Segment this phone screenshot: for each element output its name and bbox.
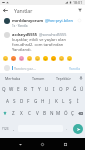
staticText: . [66, 126, 68, 131]
button[interactable]: N [48, 107, 55, 119]
button[interactable]: U [43, 83, 50, 95]
staticText: ?123 [2, 127, 9, 131]
button[interactable]: P [64, 83, 71, 95]
staticText: Yanıtını yaz... [14, 66, 36, 71]
staticText: G [34, 98, 38, 104]
button[interactable]: Shift [0, 107, 9, 119]
staticText: X [20, 110, 23, 116]
button[interactable]: Yanıtla [68, 65, 82, 72]
staticText: Yanıtlar [14, 7, 33, 14]
staticText: S [13, 98, 16, 104]
button[interactable]: T [29, 83, 36, 95]
staticText: N [50, 110, 54, 116]
button[interactable]: Teşekkür [51, 73, 76, 83]
staticText: T [31, 86, 34, 92]
button[interactable]: Emoji reaction [49, 54, 57, 63]
button[interactable]: J [46, 95, 53, 107]
button[interactable]: Voice input [76, 73, 85, 83]
staticText: Teşekkür [56, 76, 72, 81]
staticText: Ü [80, 86, 84, 92]
staticText: D [20, 98, 24, 104]
staticText: Ğ [73, 86, 77, 92]
button[interactable]: O [57, 83, 64, 95]
staticText: L [62, 98, 65, 104]
button[interactable]: Ş [67, 95, 74, 107]
button[interactable]: Emoji reaction [33, 54, 41, 63]
button[interactable]: C [25, 107, 33, 119]
button[interactable]: Z [9, 107, 17, 119]
button[interactable]: Send [70, 119, 85, 138]
staticText: E [17, 86, 20, 92]
button[interactable]: Ü [78, 83, 85, 95]
button[interactable]: Back [14, 138, 26, 150]
staticText: , [13, 126, 15, 131]
staticText: U [45, 86, 49, 92]
staticText: Z [12, 110, 15, 116]
staticText: Tamam [32, 76, 45, 81]
staticText: Q [2, 86, 6, 92]
button[interactable]: S [11, 95, 18, 107]
staticText: kuşaklar, etkili ve yaşları olan fonudhs… [12, 37, 66, 52]
button[interactable]: , [10, 119, 18, 138]
button[interactable]: Emoji reaction [41, 54, 49, 63]
button[interactable]: Ğ [71, 83, 78, 95]
button[interactable]: G [32, 95, 39, 107]
staticText: V [36, 110, 39, 116]
button[interactable]: Ç [69, 107, 76, 119]
button[interactable]: ?123 [0, 119, 10, 138]
staticText: F [27, 98, 30, 104]
staticText: İ [77, 98, 79, 104]
button[interactable]: Emoji reaction [65, 54, 73, 63]
button[interactable]: R [22, 83, 29, 95]
button[interactable]: Merhaba [0, 73, 26, 83]
staticText: 18:01 [73, 0, 83, 5]
staticText: Merhaba [5, 76, 21, 81]
button[interactable]: Y [36, 83, 43, 95]
button[interactable]: Backspace [76, 107, 85, 119]
staticText: J [49, 98, 51, 104]
button[interactable]: L [60, 95, 67, 107]
button[interactable]: V [33, 107, 41, 119]
button[interactable]: Tamam [26, 73, 51, 83]
button[interactable]: Recents [59, 138, 71, 150]
button[interactable]: Emoji reaction [25, 54, 33, 63]
staticText: W [9, 86, 14, 92]
button[interactable]: W [8, 83, 15, 95]
button[interactable]: A [4, 95, 11, 107]
staticText: C [28, 110, 31, 116]
staticText: Yanıtla [69, 66, 81, 71]
button[interactable]: Emoji reaction [17, 54, 25, 63]
button[interactable]: Home [36, 138, 48, 150]
button[interactable]: F [25, 95, 32, 107]
staticText: H [41, 98, 45, 104]
button[interactable]: Emoji reaction [9, 54, 17, 63]
staticText: A [6, 98, 9, 104]
button[interactable]: M [55, 107, 62, 119]
button[interactable]: B [41, 107, 48, 119]
button[interactable]: E [15, 83, 22, 95]
button[interactable]: I [50, 83, 57, 95]
staticText: I [53, 86, 55, 92]
staticText: @sonuhsd5555 [39, 32, 67, 37]
button[interactable]: Q [0, 83, 8, 95]
button[interactable]: Ö [62, 107, 69, 119]
button[interactable]: H [39, 95, 46, 107]
button[interactable]: X [17, 107, 25, 119]
button[interactable]: Emoji reaction [1, 54, 9, 63]
staticText: mırıldanıyorum [12, 18, 44, 23]
staticText: @her.şeyi.bilen [45, 18, 73, 23]
staticText: Ş [69, 98, 72, 104]
button[interactable]: İ [74, 95, 81, 107]
staticText: R [24, 86, 27, 92]
staticText: B [43, 110, 46, 116]
staticText: acılseyd5555 [12, 32, 38, 37]
button[interactable]: Emoji reaction [57, 54, 65, 63]
button[interactable]: D [18, 95, 25, 107]
button[interactable]: Filter [74, 5, 85, 15]
staticText: O [59, 86, 63, 92]
button[interactable]: K [53, 95, 60, 107]
button[interactable]: Back [0, 5, 11, 15]
